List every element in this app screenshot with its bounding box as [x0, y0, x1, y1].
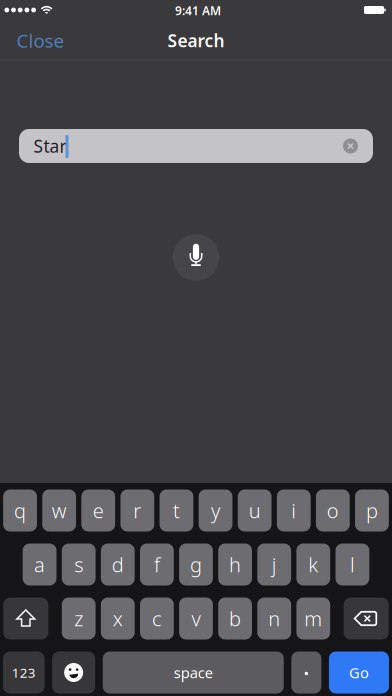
button[interactable]: e	[81, 489, 115, 531]
staticText: 123	[12, 664, 36, 681]
staticText: u	[249, 497, 261, 524]
staticText: Search	[167, 29, 224, 52]
staticText: e	[93, 497, 104, 524]
staticText: c	[152, 605, 162, 632]
staticText: t	[173, 497, 180, 524]
staticText: w	[52, 497, 67, 524]
button[interactable]: s	[62, 543, 96, 585]
staticText: k	[308, 551, 318, 578]
button[interactable]: o	[316, 489, 350, 531]
button[interactable]: v	[179, 597, 213, 639]
staticText: s	[74, 551, 83, 578]
button[interactable]: i	[277, 489, 311, 531]
staticText: j	[272, 551, 277, 578]
button[interactable]: space	[103, 651, 284, 693]
staticText: l	[350, 551, 355, 578]
staticText: space	[174, 663, 213, 682]
button[interactable]: p	[355, 489, 389, 531]
staticText: i	[291, 497, 296, 524]
button[interactable]: b	[218, 597, 252, 639]
button[interactable]: k	[296, 543, 330, 585]
button[interactable]: j	[257, 543, 291, 585]
button[interactable]: f	[140, 543, 174, 585]
staticText: r	[133, 497, 141, 524]
staticText: h	[229, 551, 241, 578]
staticText: y	[211, 497, 220, 524]
button[interactable]: u	[238, 489, 271, 531]
button[interactable]: n	[257, 597, 291, 639]
staticText: g	[190, 551, 202, 578]
button[interactable]: 123	[3, 651, 45, 693]
button[interactable]: Clear text	[343, 138, 358, 153]
staticText: d	[112, 551, 124, 578]
button[interactable]: z	[62, 597, 96, 639]
button[interactable]: g	[179, 543, 213, 585]
staticText: Go	[349, 663, 369, 682]
button[interactable]: Dictate	[173, 234, 219, 281]
button[interactable]: Star	[19, 129, 373, 163]
staticText: z	[74, 605, 83, 632]
button[interactable]: a	[23, 543, 56, 585]
button[interactable]: Shift	[3, 597, 48, 639]
button[interactable]: Close	[5, 20, 75, 60]
staticText: b	[229, 605, 241, 632]
button[interactable]: x	[101, 597, 135, 639]
staticText: p	[366, 497, 378, 524]
staticText: q	[14, 497, 26, 524]
button[interactable]: m	[296, 597, 330, 639]
button[interactable]: Period	[291, 651, 321, 693]
button[interactable]: Delete	[344, 597, 389, 639]
staticText: Close	[16, 28, 64, 53]
staticText: 9:41 AM	[175, 2, 221, 18]
staticText: a	[34, 551, 45, 578]
staticText: f	[154, 551, 160, 578]
button[interactable]: y	[199, 489, 232, 531]
button[interactable]: r	[120, 489, 154, 531]
button[interactable]: h	[218, 543, 252, 585]
staticText: n	[268, 605, 280, 632]
button[interactable]: c	[140, 597, 174, 639]
staticText: x	[113, 605, 123, 632]
button[interactable]: t	[159, 489, 193, 531]
button[interactable]: q	[3, 489, 37, 531]
staticText: o	[327, 497, 339, 524]
staticText: v	[191, 605, 200, 632]
button[interactable]: w	[42, 489, 76, 531]
button[interactable]: d	[101, 543, 135, 585]
button[interactable]: l	[335, 543, 369, 585]
staticText: Star	[33, 134, 66, 157]
button[interactable]: Go	[329, 651, 389, 693]
staticText: m	[304, 605, 322, 632]
button[interactable]: Emoji	[52, 651, 95, 693]
